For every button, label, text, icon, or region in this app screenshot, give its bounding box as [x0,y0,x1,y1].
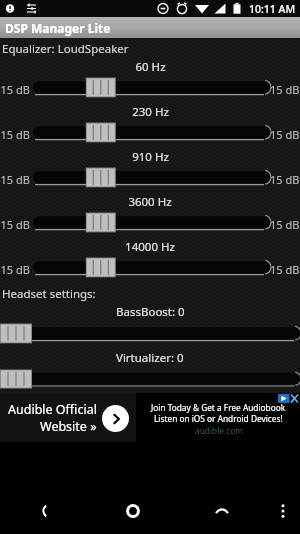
staticText: 15 dB [270,172,300,187]
button[interactable]: 60 Hz [0,57,300,102]
staticText: BassBoost: 0 [116,304,185,320]
staticText: DSP Manager Lite [5,20,111,36]
button[interactable]: 230 Hz [0,102,300,147]
staticText: 230 Hz [132,104,169,120]
button[interactable]: BassBoost: 0 [0,302,300,348]
staticText: -15 dB [0,262,30,277]
staticText: Website » [40,418,97,435]
staticText: 15 dB [270,262,300,277]
button[interactable]: 14000 Hz [0,237,300,282]
button[interactable]: Home [88,488,177,534]
staticText: 60 Hz [135,59,166,75]
staticText: audible.com [195,425,243,436]
staticText: Headset settings: [2,286,96,302]
button[interactable]: DSP Manager Lite [0,17,300,38]
button[interactable]: Recent apps [177,488,266,534]
staticText: 15 dB [270,82,300,97]
staticText: 15 dB [270,217,300,232]
button[interactable]: Audible Official [0,393,300,442]
staticText: Equalizer: LoudSpeaker [2,41,129,57]
staticText: -15 dB [0,217,30,232]
staticText: -15 dB [0,172,30,187]
staticText: Audible Official [8,401,97,418]
staticText: -15 dB [0,127,30,142]
button[interactable]: Virtualizer: 0 [0,348,300,393]
button[interactable]: 3600 Hz [0,192,300,237]
staticText: 10:11 AM [249,2,296,16]
staticText: -15 dB [0,82,30,97]
button[interactable]: 910 Hz [0,147,300,192]
staticText: Listen on iOS or Android Devices! [154,413,283,424]
other: Go to Audible [102,405,129,432]
staticText: 14000 Hz [125,239,175,255]
staticText: 3600 Hz [128,194,172,210]
staticText: 910 Hz [132,149,169,165]
button[interactable]: Ad choices [278,394,299,403]
button[interactable]: More options [266,488,300,534]
staticText: Virtualizer: 0 [116,350,184,366]
staticText: 15 dB [270,127,300,142]
button[interactable]: Back [0,488,88,534]
staticText: Join Today & Get a Free Audiobook [151,402,286,413]
